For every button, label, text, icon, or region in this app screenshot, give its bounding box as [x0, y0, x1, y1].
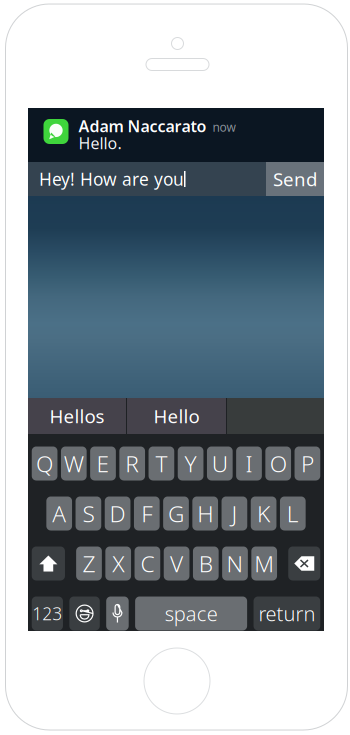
button[interactable]: P	[294, 446, 320, 480]
staticText: Hellos	[49, 404, 104, 428]
button[interactable]: Hello	[127, 398, 226, 434]
button[interactable]: Dictation	[106, 596, 129, 630]
staticText: J	[231, 498, 237, 528]
staticText: Hello	[153, 404, 199, 428]
button[interactable]: F	[134, 496, 160, 530]
button[interactable]: W	[61, 446, 87, 480]
staticText: X	[112, 548, 124, 578]
button[interactable]: S	[76, 496, 101, 530]
button[interactable]: A	[46, 496, 72, 530]
button[interactable]: Emoji	[69, 596, 100, 630]
staticText: F	[141, 498, 152, 528]
button[interactable]: H	[192, 496, 218, 530]
button[interactable]: L	[280, 496, 306, 530]
button[interactable]: T	[149, 446, 174, 480]
staticText: Hello.	[78, 132, 121, 154]
button[interactable]: U	[207, 446, 233, 480]
staticText: L	[287, 498, 299, 528]
button[interactable]: Send	[266, 162, 324, 196]
button[interactable]: K	[251, 496, 276, 530]
staticText: I	[245, 448, 252, 478]
staticText: B	[199, 548, 213, 578]
button[interactable]: X	[105, 546, 131, 580]
staticText: K	[257, 498, 270, 528]
button[interactable]: O	[265, 446, 291, 480]
staticText: A	[52, 498, 66, 528]
button[interactable]: Hellos	[28, 398, 126, 434]
staticText: O	[270, 448, 287, 478]
staticText: U	[212, 448, 228, 478]
staticText: E	[96, 448, 109, 478]
staticText: N	[226, 548, 243, 578]
button[interactable]: Q	[32, 446, 57, 480]
button[interactable]: R	[119, 446, 145, 480]
staticText: S	[82, 498, 94, 528]
button[interactable]: N	[222, 546, 248, 580]
button[interactable]: Shift	[32, 546, 65, 580]
button[interactable]: M	[251, 546, 277, 580]
button[interactable]: B	[193, 546, 219, 580]
staticText: T	[155, 448, 167, 478]
staticText: P	[301, 448, 314, 478]
staticText: R	[125, 448, 139, 478]
staticText: now	[212, 119, 235, 135]
button[interactable]: Delete	[288, 546, 320, 580]
staticText: V	[170, 548, 183, 578]
button[interactable]: V	[164, 546, 189, 580]
button[interactable]: Y	[178, 446, 203, 480]
staticText: Q	[36, 448, 53, 478]
staticText: return	[258, 600, 315, 627]
staticText: G	[168, 498, 184, 528]
button[interactable]: Z	[76, 546, 102, 580]
staticText: C	[140, 548, 154, 578]
staticText: H	[197, 498, 213, 528]
staticText: M	[254, 548, 274, 578]
staticText: Adam Naccarato	[78, 115, 206, 137]
button[interactable]: I	[236, 446, 262, 480]
button[interactable]: return	[253, 596, 320, 630]
button[interactable]: D	[105, 496, 130, 530]
staticText: Hey! How are you	[39, 167, 184, 190]
staticText: space	[165, 600, 218, 627]
staticText: Send	[273, 167, 317, 191]
staticText: Z	[82, 548, 95, 578]
staticText: W	[64, 448, 84, 478]
button[interactable]: C	[135, 546, 160, 580]
staticText: D	[110, 498, 126, 528]
button[interactable]: E	[90, 446, 116, 480]
button[interactable]: 123	[32, 596, 63, 630]
button[interactable]: J	[222, 496, 247, 530]
button[interactable]: G	[163, 496, 189, 530]
staticText: Y	[185, 448, 197, 478]
button[interactable]: space	[135, 596, 247, 630]
staticText: 123	[32, 602, 62, 625]
